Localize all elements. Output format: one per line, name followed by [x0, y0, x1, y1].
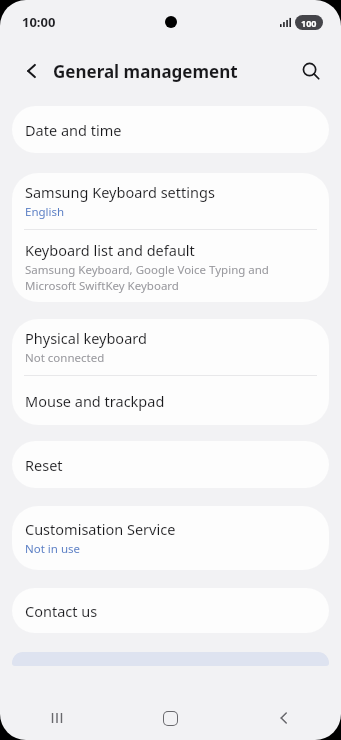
- button[interactable]: Contact us: [12, 588, 329, 633]
- staticText: Customisation Service: [25, 519, 176, 539]
- button[interactable]: Reset: [12, 441, 329, 488]
- button[interactable]: Back: [14, 53, 50, 89]
- staticText: Samsung Keyboard, Google Voice Typing an…: [25, 262, 269, 293]
- staticText: General management: [53, 60, 238, 83]
- button[interactable]: Home: [113, 696, 227, 740]
- button[interactable]: Samsung Keyboard settings: [12, 173, 329, 229]
- staticText: Reset: [25, 455, 63, 475]
- button[interactable]: Customisation Service: [12, 506, 329, 570]
- staticText: Contact us: [25, 601, 98, 621]
- button[interactable]: Keyboard list and default: [12, 230, 329, 302]
- staticText: Not connected: [25, 350, 105, 366]
- button[interactable]: Physical keyboard: [12, 319, 329, 375]
- button[interactable]: Back: [227, 696, 341, 740]
- button[interactable]: Recent apps: [0, 696, 113, 740]
- staticText: Not in use: [25, 541, 81, 557]
- staticText: Physical keyboard: [25, 328, 147, 348]
- staticText: Date and time: [25, 120, 122, 140]
- staticText: 100: [301, 17, 317, 29]
- button[interactable]: Date and time: [12, 106, 329, 153]
- staticText: English: [25, 204, 65, 220]
- button[interactable]: Mouse and trackpad: [12, 376, 329, 425]
- button[interactable]: Search: [293, 53, 329, 89]
- staticText: Keyboard list and default: [25, 240, 195, 260]
- staticText: Mouse and trackpad: [25, 391, 165, 411]
- staticText: Samsung Keyboard settings: [25, 182, 215, 202]
- staticText: 10:00: [22, 13, 56, 31]
